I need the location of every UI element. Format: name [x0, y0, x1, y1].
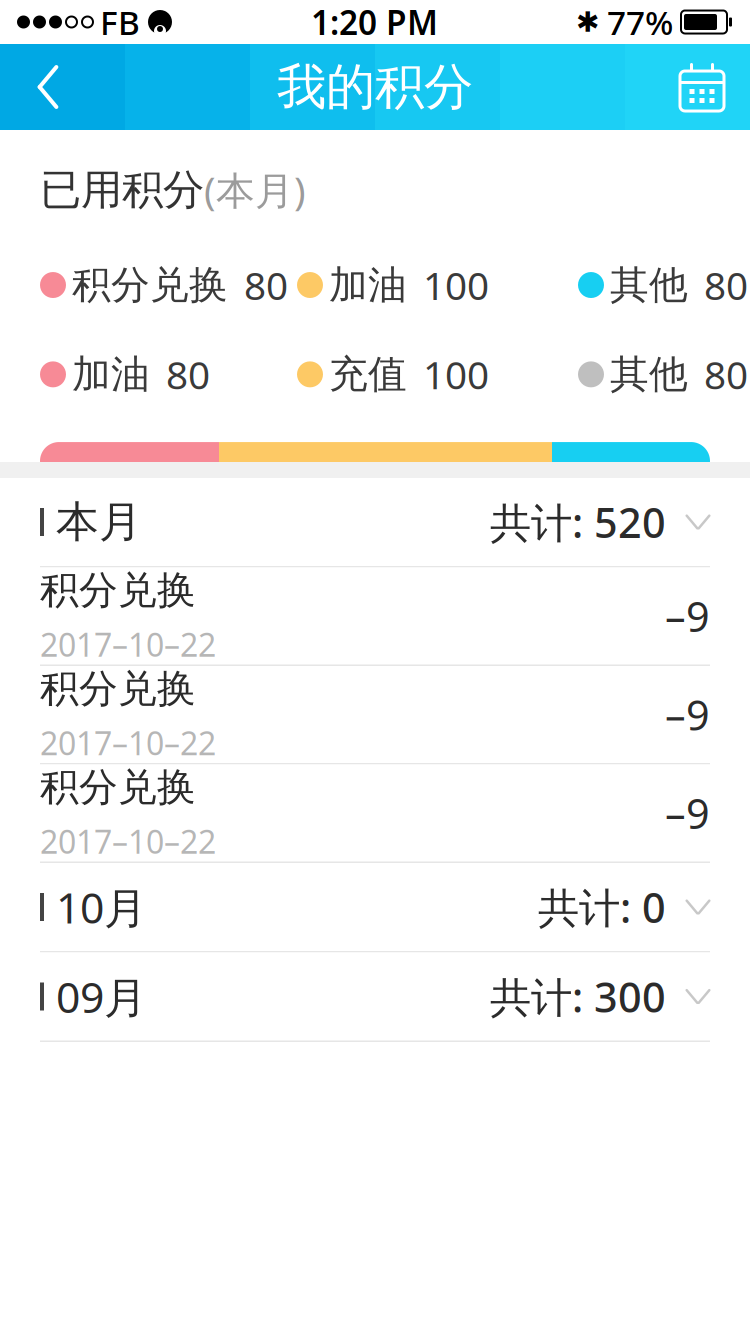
staticText: 09月 — [56, 968, 147, 1025]
staticText: 积分兑换 — [40, 665, 196, 712]
button[interactable]: 10月 — [0, 863, 750, 951]
staticText: 80 — [166, 349, 210, 400]
staticText: 积分兑换 — [72, 261, 228, 309]
staticText: 2017–10–22 — [40, 820, 216, 862]
staticText: 其他 — [610, 261, 688, 309]
staticText: 共计: 520 — [490, 495, 666, 549]
staticText: 积分兑换 — [40, 566, 196, 614]
staticText: 100 — [423, 349, 489, 400]
staticText: 80 — [704, 349, 748, 400]
staticText: (本月) — [204, 164, 306, 215]
staticText: –9 — [665, 786, 710, 840]
button[interactable]: 积分兑换 — [0, 567, 750, 664]
staticText: 10月 — [56, 879, 147, 935]
button[interactable]: 本月 — [0, 478, 750, 566]
staticText: 我的积分 — [277, 57, 473, 117]
staticText: 77% — [607, 0, 673, 44]
button[interactable]: 积分兑换 — [0, 764, 750, 861]
button[interactable]: 09月 — [0, 952, 750, 1040]
staticText: –9 — [665, 589, 710, 643]
staticText: 已用积分 — [40, 165, 204, 215]
staticText: FB — [100, 0, 140, 44]
button[interactable]: Back — [0, 44, 96, 130]
staticText: 2017–10–22 — [40, 721, 216, 764]
staticText: 积分兑换 — [40, 763, 196, 811]
staticText: 其他 — [610, 351, 688, 398]
staticText: 80 — [704, 259, 748, 311]
staticText: 1:20 PM — [311, 0, 438, 44]
staticText: 2017–10–22 — [40, 623, 216, 665]
button[interactable]: 积分兑换 — [0, 666, 750, 763]
staticText: 80 — [244, 259, 288, 311]
staticText: ✱ — [576, 6, 599, 38]
button[interactable]: Calendar — [654, 44, 750, 130]
staticText: 共计: 300 — [490, 969, 666, 1024]
staticText: 加油 — [329, 261, 407, 309]
staticText: 共计: 0 — [538, 880, 666, 934]
staticText: 100 — [423, 259, 489, 311]
staticText: –9 — [665, 687, 710, 742]
staticText: 加油 — [72, 351, 150, 398]
staticText: 充值 — [329, 351, 407, 398]
staticText: 本月 — [56, 496, 142, 548]
